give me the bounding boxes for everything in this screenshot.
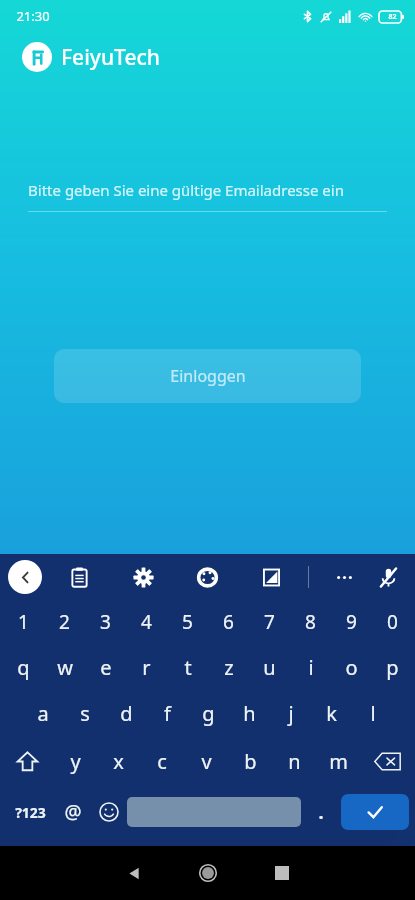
button[interactable]: Delete xyxy=(360,736,415,786)
button[interactable]: Settings xyxy=(128,562,158,592)
button[interactable]: a xyxy=(22,690,64,736)
staticText: Bitte geben Sie eine gültige Emailadress… xyxy=(28,180,344,200)
button[interactable]: l xyxy=(352,690,393,736)
button[interactable]: Theme xyxy=(192,562,222,592)
button[interactable]: g xyxy=(188,690,229,736)
button[interactable]: . xyxy=(301,786,341,838)
button[interactable]: Back xyxy=(97,846,171,900)
staticText: 82 xyxy=(388,12,397,22)
button[interactable]: 7 xyxy=(249,600,290,644)
staticText: 7 xyxy=(264,609,275,635)
button[interactable]: y xyxy=(54,736,97,786)
button[interactable]: Home xyxy=(171,846,245,900)
button[interactable]: Emoji xyxy=(91,786,127,838)
staticText: y xyxy=(70,748,81,775)
staticText: e xyxy=(100,654,112,681)
staticText: j xyxy=(288,700,294,727)
button[interactable]: Recents xyxy=(245,846,319,900)
staticText: l xyxy=(370,700,376,727)
button[interactable]: 4 xyxy=(126,600,167,644)
button[interactable]: 1 xyxy=(2,600,44,644)
button[interactable]: z xyxy=(208,644,249,690)
button[interactable]: Clipboard xyxy=(64,562,94,592)
button[interactable]: Resize keyboard xyxy=(256,562,286,592)
staticText: u xyxy=(263,654,276,681)
staticText: s xyxy=(80,700,90,727)
staticText: 1 xyxy=(18,609,29,635)
button[interactable]: h xyxy=(229,690,270,736)
button[interactable]: u xyxy=(249,644,290,690)
button[interactable]: s xyxy=(64,690,106,736)
staticText: h xyxy=(243,700,256,727)
button[interactable]: Space xyxy=(127,797,301,827)
button[interactable]: 2 xyxy=(44,600,85,644)
button[interactable]: r xyxy=(126,644,167,690)
button[interactable]: t xyxy=(167,644,208,690)
staticText: b xyxy=(244,748,257,775)
button[interactable]: w xyxy=(44,644,85,690)
staticText: FeiyuTech xyxy=(61,43,160,72)
staticText: q xyxy=(17,654,30,681)
button[interactable]: j xyxy=(270,690,311,736)
staticText: m xyxy=(329,748,348,775)
button[interactable]: 8 xyxy=(290,600,331,644)
button[interactable]: Voice input off xyxy=(373,562,403,592)
button[interactable]: 6 xyxy=(208,600,249,644)
button[interactable]: n xyxy=(272,736,316,786)
staticText: 6 xyxy=(223,609,234,635)
button[interactable]: v xyxy=(184,736,228,786)
staticText: 9 xyxy=(346,609,357,635)
staticText: k xyxy=(326,700,337,727)
button[interactable]: b xyxy=(228,736,272,786)
button[interactable]: 0 xyxy=(372,600,413,644)
staticText: d xyxy=(120,700,133,727)
button[interactable]: d xyxy=(106,690,147,736)
staticText: w xyxy=(57,654,73,681)
staticText: ?123 xyxy=(15,803,46,822)
button[interactable]: 5 xyxy=(167,600,208,644)
staticText: p xyxy=(386,654,399,681)
button[interactable]: q xyxy=(2,644,44,690)
staticText: 2 xyxy=(59,609,70,635)
button[interactable]: m xyxy=(316,736,360,786)
button[interactable]: Bitte geben Sie eine gültige Emailadress… xyxy=(28,180,387,212)
staticText: 0 xyxy=(387,609,398,635)
button[interactable]: o xyxy=(331,644,372,690)
staticText: n xyxy=(288,748,301,775)
button[interactable]: More options xyxy=(329,562,359,592)
button[interactable]: c xyxy=(140,736,184,786)
button[interactable]: 3 xyxy=(85,600,126,644)
staticText: z xyxy=(224,654,234,681)
staticText: 8 xyxy=(305,609,316,635)
staticText: 21:30 xyxy=(16,7,50,25)
staticText: r xyxy=(142,654,151,681)
button[interactable]: e xyxy=(85,644,126,690)
button[interactable]: i xyxy=(290,644,331,690)
staticText: o xyxy=(345,654,358,681)
staticText: . xyxy=(318,800,324,825)
staticText: Einloggen xyxy=(170,365,246,387)
staticText: f xyxy=(164,700,171,727)
button[interactable]: f xyxy=(147,690,188,736)
button[interactable]: k xyxy=(311,690,352,736)
button[interactable]: Back xyxy=(8,560,42,594)
staticText: t xyxy=(184,654,192,681)
button[interactable]: Einloggen xyxy=(54,349,361,403)
button[interactable]: @ xyxy=(55,786,91,838)
staticText: i xyxy=(308,654,314,681)
staticText: 3 xyxy=(100,609,111,635)
staticText: x xyxy=(113,748,124,775)
staticText: a xyxy=(37,700,49,727)
button[interactable]: p xyxy=(372,644,413,690)
button[interactable]: 9 xyxy=(331,600,372,644)
staticText: c xyxy=(157,748,167,775)
staticText: 4 xyxy=(141,609,152,635)
button[interactable]: Shift xyxy=(0,736,54,786)
staticText: 5 xyxy=(182,609,193,635)
staticText: @ xyxy=(64,799,82,825)
button[interactable]: Enter xyxy=(341,794,409,830)
staticText: g xyxy=(202,700,215,727)
button[interactable]: ?123 xyxy=(6,786,55,838)
button[interactable]: x xyxy=(97,736,140,786)
staticText: v xyxy=(201,748,212,775)
